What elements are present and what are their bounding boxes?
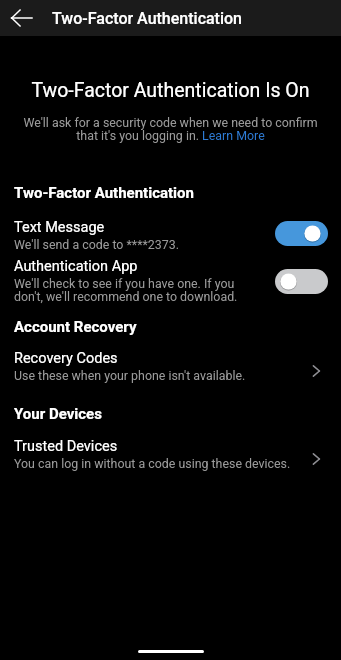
staticText: We'll ask for a security code when we ne… (20, 115, 321, 143)
staticText: Two-Factor Authentication (52, 9, 242, 28)
button[interactable]: Authentication App (0, 250, 341, 311)
button[interactable]: Recovery Codes (0, 342, 341, 389)
staticText: Text Message (14, 219, 105, 236)
button[interactable]: Trusted Devices (0, 430, 341, 477)
button[interactable]: Turn on (275, 269, 328, 294)
staticText: Account Recovery (14, 318, 137, 336)
staticText: Your Devices (14, 405, 102, 423)
staticText: Two-Factor Authentication Is On (0, 79, 341, 102)
button[interactable]: Text Message (0, 211, 341, 258)
staticText: We'll check to see if you have one. If y… (14, 276, 238, 304)
button[interactable]: Turn off (275, 221, 328, 246)
staticText: Trusted Devices (14, 438, 118, 455)
staticText: You can log in without a code using thes… (14, 456, 291, 471)
staticText: We'll send a code to ****2373. (14, 237, 179, 252)
staticText: Recovery Codes (14, 350, 118, 367)
button[interactable]: Back (3, 0, 39, 36)
staticText: Authentication App (14, 258, 138, 275)
button[interactable]: Learn More (201, 130, 266, 144)
staticText: Use these when your phone isn't availabl… (14, 368, 246, 383)
staticText: Two-Factor Authentication (14, 184, 194, 202)
